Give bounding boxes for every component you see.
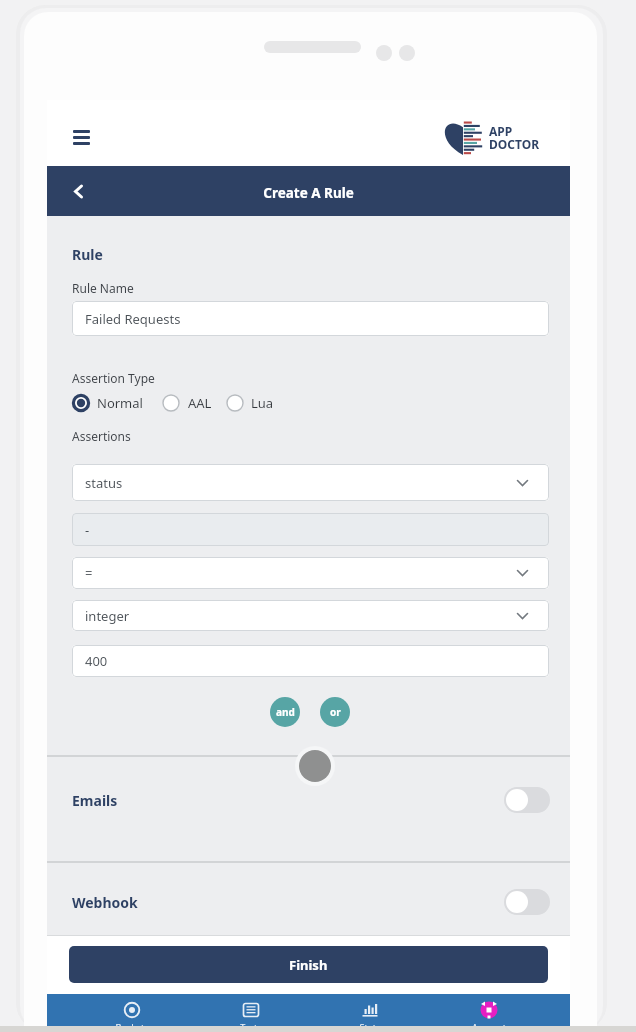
staticText: Finish [289, 956, 328, 974]
staticText: Emails [72, 791, 118, 810]
staticText: Lua [251, 394, 274, 412]
button[interactable]: and [270, 697, 300, 727]
button[interactable]: 400 [72, 645, 549, 677]
button[interactable] [430, 996, 548, 1030]
button[interactable]: status [72, 464, 549, 501]
staticText: integer [85, 607, 130, 625]
staticText: DOCTOR [489, 136, 540, 152]
staticText: Account [449, 1021, 529, 1032]
button[interactable] [504, 787, 550, 813]
staticText: Normal [97, 394, 143, 412]
staticText: Buckets [92, 1021, 172, 1032]
button[interactable]: or [320, 697, 350, 727]
staticText: status [85, 474, 123, 492]
staticText: Create A Rule [47, 184, 570, 202]
button[interactable]: Finish [69, 946, 548, 983]
button[interactable] [162, 394, 239, 414]
button[interactable] [192, 996, 310, 1030]
button[interactable]: - [72, 513, 549, 546]
staticText: - [85, 521, 90, 539]
staticText: Assertions [72, 428, 131, 444]
staticText: or [330, 705, 341, 719]
staticText: Assertion Type [72, 370, 155, 386]
staticText: = [85, 564, 93, 582]
button[interactable] [73, 996, 191, 1030]
button[interactable] [299, 750, 331, 782]
button[interactable] [504, 889, 550, 915]
staticText: APP [489, 123, 513, 139]
staticText: Stats [330, 1021, 410, 1032]
staticText: AAL [188, 394, 212, 412]
button[interactable] [72, 394, 148, 414]
button[interactable]: Failed Requests [72, 301, 549, 336]
staticText: and [276, 705, 295, 719]
staticText: Webhook [72, 893, 138, 912]
button[interactable] [70, 126, 94, 148]
staticText: Failed Requests [85, 310, 181, 328]
staticText: Tests [211, 1021, 291, 1032]
staticText: Rule [72, 245, 103, 264]
staticText: Rule Name [72, 280, 134, 296]
button[interactable] [311, 996, 429, 1030]
button[interactable] [226, 394, 302, 414]
button[interactable]: integer [72, 600, 549, 631]
button[interactable]: = [72, 557, 549, 589]
staticText: 400 [85, 652, 108, 670]
button[interactable] [74, 185, 83, 198]
